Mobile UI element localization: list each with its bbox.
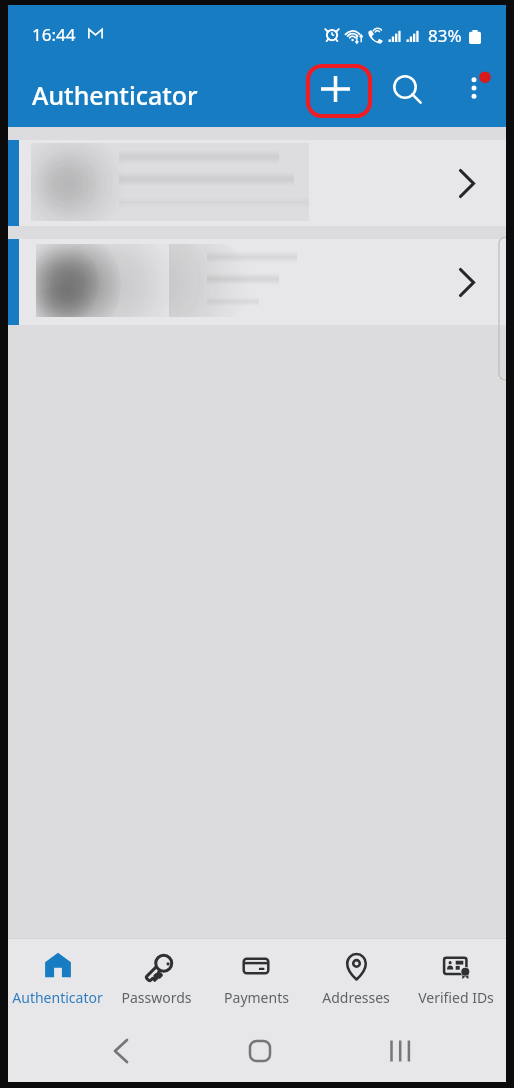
button[interactable] <box>19 239 506 325</box>
staticText: 16:44 <box>32 23 76 46</box>
button[interactable]: Passwords <box>107 939 206 1018</box>
staticText: Verified IDs <box>418 988 494 1007</box>
button[interactable]: More options <box>453 60 497 104</box>
staticText: Authenticator <box>32 78 198 112</box>
staticText: Passwords <box>121 988 192 1007</box>
button[interactable]: Back <box>87 1022 155 1080</box>
button[interactable]: Verified IDs <box>406 939 506 1018</box>
button[interactable]: Addresses <box>306 939 406 1018</box>
staticText: Payments <box>224 988 289 1007</box>
staticText: Authenticator <box>12 988 103 1007</box>
button[interactable]: Add <box>302 62 376 120</box>
button[interactable]: Search <box>381 65 429 113</box>
button[interactable]: Home <box>227 1022 293 1080</box>
button[interactable]: Payments <box>206 939 306 1018</box>
staticText: Addresses <box>322 988 390 1007</box>
button[interactable] <box>19 140 506 226</box>
button[interactable]: Authenticator <box>8 939 107 1018</box>
staticText: 83% <box>428 24 462 47</box>
button[interactable]: Recents <box>367 1022 433 1080</box>
